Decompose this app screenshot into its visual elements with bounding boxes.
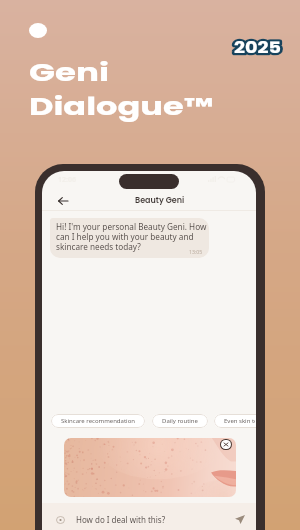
staticText: 2025 <box>234 37 281 58</box>
staticText: Even skin tone <box>224 417 255 425</box>
button[interactable]: Skincare recommendation <box>51 414 145 428</box>
button[interactable]: Daily routine <box>152 414 208 428</box>
staticText: Daily routine <box>162 417 198 425</box>
staticText: Beauty Geni <box>135 195 185 206</box>
staticText: 13:05 <box>189 248 203 255</box>
button[interactable]: Send <box>235 515 245 524</box>
button[interactable]: Add attachment <box>56 516 65 524</box>
staticText: How do I deal with this? <box>76 514 166 525</box>
staticText: Geni <box>29 56 110 90</box>
button[interactable]: Even skin tone <box>214 414 256 428</box>
button[interactable]: 2025 <box>234 37 271 58</box>
staticText: Hi! I'm your personal Beauty Geni. How c… <box>56 221 209 252</box>
button[interactable]: Remove image <box>221 440 231 449</box>
staticText: 12:06 <box>58 175 76 185</box>
button[interactable]: Back <box>53 192 73 210</box>
staticText: Dialogue™ <box>29 90 214 124</box>
staticText: 2025 <box>234 37 281 58</box>
staticText: Skincare recommendation <box>61 417 135 425</box>
